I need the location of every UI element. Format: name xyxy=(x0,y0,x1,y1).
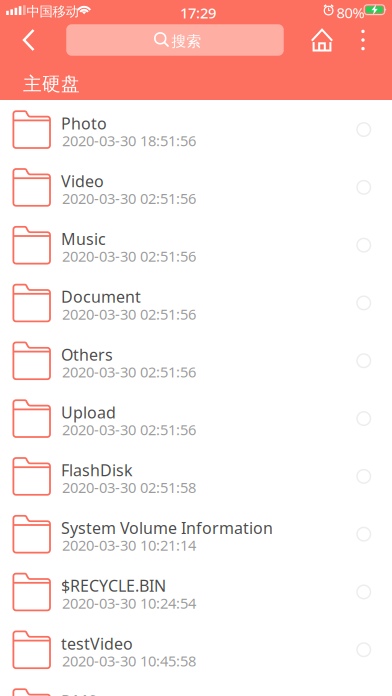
staticText: 主硬盘 xyxy=(23,73,80,95)
staticText: 2020-03-30 02:51:56 xyxy=(62,304,196,324)
staticText: testVideo xyxy=(61,633,133,654)
staticText: 搜索 xyxy=(171,32,201,50)
staticText: 2020-03-30 10:21:14 xyxy=(62,535,196,555)
staticText: 2020-03-30 02:51:56 xyxy=(62,420,196,439)
button[interactable]: Document xyxy=(0,273,392,331)
staticText: Music xyxy=(61,228,106,249)
staticText: Others xyxy=(61,344,113,365)
staticText: 2020-03-30 02:51:56 xyxy=(62,362,196,381)
staticText: 2020-03-30 02:51:56 xyxy=(62,189,196,208)
staticText: 2020-03-30 18:51:56 xyxy=(62,131,196,150)
button[interactable]: Back xyxy=(9,20,49,60)
button[interactable]: Home xyxy=(302,20,342,60)
button[interactable]: Search xyxy=(66,24,284,56)
staticText: Photo xyxy=(61,113,107,134)
button[interactable]: testVideo xyxy=(0,620,392,678)
button[interactable]: Video xyxy=(0,158,392,216)
button[interactable]: Photo xyxy=(0,100,392,158)
button[interactable]: $RECYCLE.BIN xyxy=(0,562,392,620)
staticText: $RECYCLE.BIN xyxy=(61,575,166,596)
staticText: 中国移动 xyxy=(27,3,79,20)
button[interactable]: Upload xyxy=(0,389,392,447)
button[interactable]: Others xyxy=(0,331,392,389)
staticText: 80% xyxy=(336,3,364,22)
staticText: FlashDisk xyxy=(61,459,133,481)
staticText: Upload xyxy=(61,402,116,423)
staticText: 2020-03-30 02:51:56 xyxy=(62,246,196,266)
button[interactable]: System Volume Information xyxy=(0,505,392,562)
staticText: 2020-03-30 10:45:58 xyxy=(62,651,196,670)
staticText: DMS xyxy=(61,691,97,696)
staticText: Document xyxy=(61,286,141,307)
button[interactable]: DMS xyxy=(0,678,392,696)
button[interactable]: FlashDisk xyxy=(0,447,392,505)
staticText: 2020-03-30 02:51:58 xyxy=(62,478,196,497)
staticText: System Volume Information xyxy=(61,517,273,538)
button[interactable]: More options xyxy=(348,20,378,60)
staticText: 2020-03-30 10:24:54 xyxy=(62,593,196,613)
staticText: 17:29 xyxy=(180,3,216,22)
staticText: Video xyxy=(61,170,104,192)
button[interactable]: Music xyxy=(0,216,392,273)
